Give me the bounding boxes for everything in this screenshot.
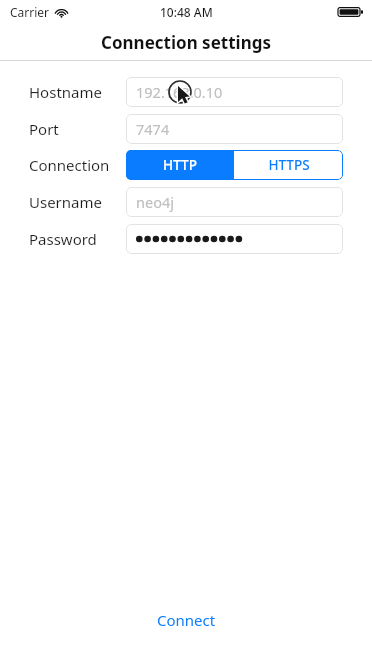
button[interactable]: HTTPS	[234, 150, 343, 180]
staticText: Connection settings	[101, 31, 271, 54]
button[interactable]: 192.168.0.10	[126, 77, 343, 107]
other: Wi-Fi signal	[55, 7, 68, 18]
staticText: neo4j	[136, 192, 174, 212]
staticText: HTTPS	[268, 156, 310, 174]
staticText: Carrier	[10, 4, 50, 20]
other: Battery full	[338, 6, 363, 18]
staticText: Connection	[29, 155, 110, 175]
button[interactable]: HTTP	[126, 150, 234, 180]
staticText: HTTP	[163, 156, 197, 174]
staticText: Connect	[157, 610, 216, 630]
staticText: 7474	[136, 119, 170, 139]
staticText: Password	[29, 229, 97, 249]
button[interactable]: Connect	[0, 603, 372, 637]
button[interactable]: 7474	[126, 114, 343, 144]
staticText: 192.168.0.10	[136, 82, 223, 102]
staticText: Port	[29, 119, 59, 139]
button[interactable]	[126, 224, 343, 254]
staticText: Username	[29, 192, 102, 212]
staticText: Hostname	[29, 82, 102, 102]
staticText: 10:48 AM	[160, 4, 213, 20]
button[interactable]: neo4j	[126, 187, 343, 217]
